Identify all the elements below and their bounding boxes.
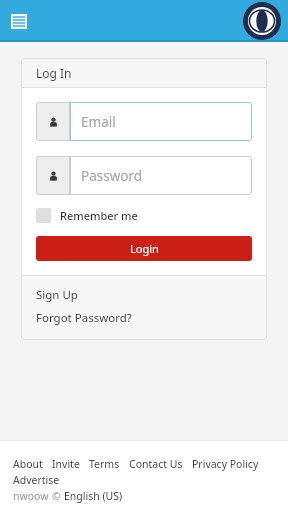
staticText: Remember me [60, 208, 138, 223]
staticText: nwoow [13, 489, 52, 503]
staticText: Terms [89, 457, 120, 471]
staticText: Contact Us [129, 457, 183, 471]
staticText: English (US) [64, 489, 123, 503]
staticText: Forgot Password? [36, 310, 132, 326]
staticText: Invite [52, 457, 80, 471]
button[interactable]: Sign Up [36, 287, 78, 303]
button[interactable]: Contact Us [129, 457, 192, 471]
staticText: © [52, 489, 64, 503]
staticText: Privacy Policy [192, 457, 259, 471]
button[interactable]: Terms [89, 457, 129, 471]
staticText: About [13, 457, 43, 471]
button[interactable]: Privacy Policy [192, 457, 268, 471]
button[interactable]: Forgot Password? [36, 310, 132, 326]
staticText: Email [81, 113, 116, 131]
staticText: Advertise [13, 473, 60, 487]
button[interactable]: About [13, 457, 52, 471]
button[interactable]: Password [36, 156, 252, 195]
button[interactable]: Menu [8, 10, 30, 32]
button[interactable]: Invite [52, 457, 89, 471]
staticText: Log In [36, 65, 72, 81]
staticText: Login [130, 241, 159, 256]
button[interactable]: Advertise [13, 473, 60, 487]
button[interactable]: English (US) [64, 489, 123, 503]
button[interactable]: Login [36, 236, 252, 261]
staticText: Sign Up [36, 287, 78, 303]
button[interactable]: Email [36, 102, 252, 141]
button[interactable]: Remember me [36, 208, 142, 223]
button[interactable]: Logo [242, 1, 282, 41]
staticText: Password [81, 167, 143, 185]
